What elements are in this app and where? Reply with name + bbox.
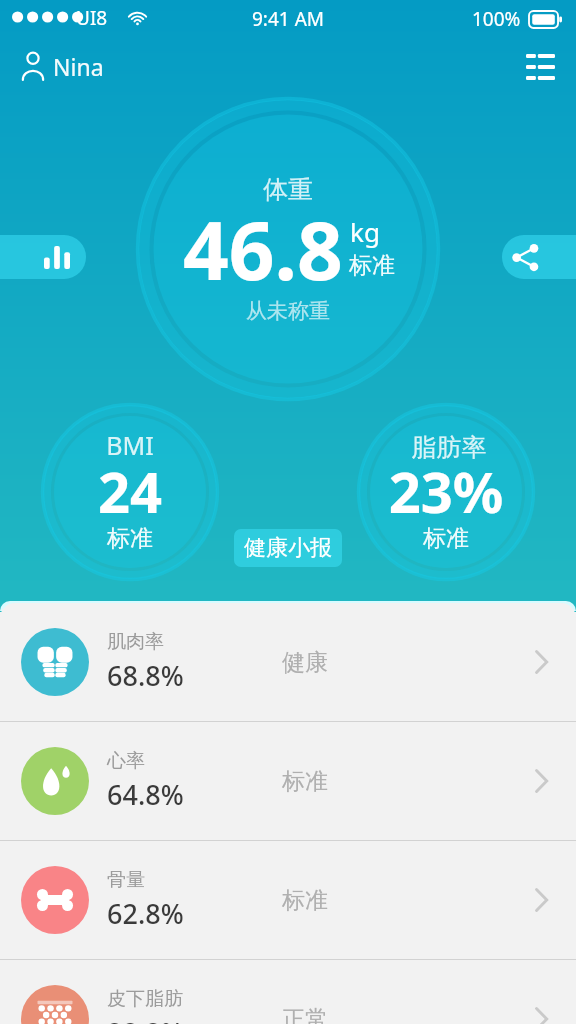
staticText: 68.8% bbox=[107, 657, 184, 694]
staticText: Nina bbox=[53, 51, 104, 82]
staticText: 9:41 AM bbox=[252, 6, 325, 32]
staticText: 28.8% bbox=[107, 1014, 184, 1024]
button[interactable]: 骨量 bbox=[0, 841, 576, 959]
button[interactable]: 皮下脂肪 bbox=[0, 960, 576, 1024]
staticText: 体重 bbox=[263, 174, 313, 205]
staticText: kg bbox=[350, 214, 380, 249]
button[interactable]: 健康小报 bbox=[234, 529, 342, 567]
staticText: 健康 bbox=[282, 648, 328, 677]
button[interactable]: 肌肉率 bbox=[0, 603, 576, 721]
button[interactable]: 心率 bbox=[0, 722, 576, 840]
staticText: BMI bbox=[60, 428, 200, 462]
button[interactable]: Share bbox=[502, 235, 576, 279]
staticText: 标准 bbox=[376, 524, 516, 553]
staticText: 健康小报 bbox=[244, 534, 332, 562]
staticText: 23% bbox=[376, 453, 516, 529]
staticText: 心率 bbox=[107, 749, 145, 773]
staticText: 24 bbox=[60, 453, 200, 529]
staticText: UI8 bbox=[76, 5, 108, 31]
staticText: 正常 bbox=[282, 1005, 328, 1024]
staticText: 64.8% bbox=[107, 776, 184, 813]
staticText: 皮下脂肪 bbox=[107, 987, 183, 1011]
staticText: 骨量 bbox=[107, 868, 145, 892]
staticText: 62.8% bbox=[107, 895, 184, 932]
staticText: 肌肉率 bbox=[107, 630, 164, 654]
staticText: 100% bbox=[472, 6, 521, 32]
staticText: 标准 bbox=[282, 886, 328, 915]
staticText: 从未称重 bbox=[246, 298, 330, 324]
staticText: 46.8 bbox=[183, 194, 343, 303]
button[interactable]: Statistics bbox=[0, 235, 86, 279]
staticText: 标准 bbox=[282, 767, 328, 796]
staticText: 脂肪率 bbox=[379, 432, 519, 463]
button[interactable]: Nina bbox=[0, 42, 118, 89]
button[interactable]: Menu bbox=[505, 40, 576, 90]
staticText: 标准 bbox=[349, 251, 395, 280]
staticText: 标准 bbox=[60, 524, 200, 553]
